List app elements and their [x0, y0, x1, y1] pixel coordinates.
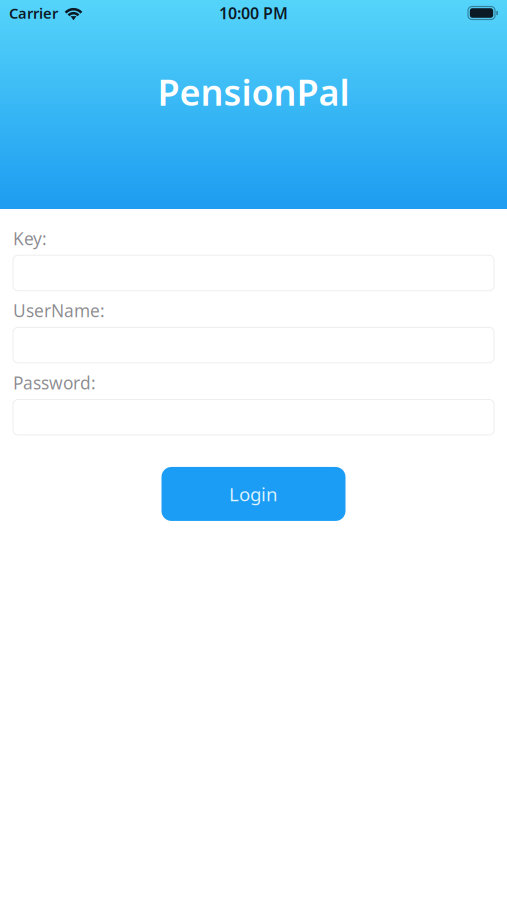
button[interactable]: Key:	[13, 255, 494, 291]
staticText: UserName:	[13, 299, 105, 322]
staticText: Key:	[13, 227, 47, 250]
staticText: Carrier	[9, 3, 58, 23]
button[interactable]: Login	[161, 467, 345, 521]
staticText: Login	[229, 482, 278, 506]
button[interactable]: UserName:	[13, 327, 494, 363]
staticText: 10:00 PM	[219, 2, 288, 24]
staticText: Password:	[13, 371, 96, 394]
staticText: PensionPal	[157, 68, 349, 116]
